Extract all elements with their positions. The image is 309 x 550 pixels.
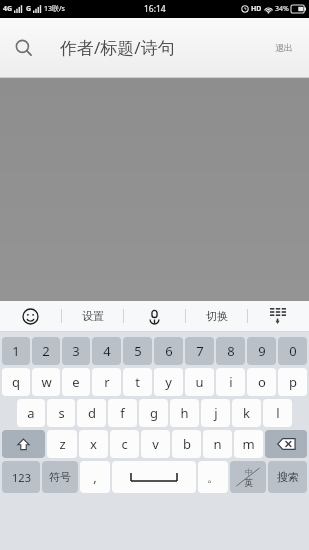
button[interactable]: u: [185, 368, 214, 396]
button[interactable]: r: [92, 368, 121, 396]
staticText: 16:14: [144, 3, 166, 15]
button[interactable]: l: [263, 399, 292, 427]
button[interactable]: p: [278, 368, 307, 396]
button[interactable]: w: [32, 368, 60, 396]
staticText: p: [289, 373, 297, 391]
button[interactable]: 退出: [271, 38, 297, 57]
button[interactable]: 3: [62, 337, 90, 365]
staticText: 英: [244, 477, 253, 488]
staticText: f: [120, 404, 125, 422]
staticText: 1: [12, 342, 20, 360]
staticText: 符号: [49, 470, 71, 484]
button[interactable]: Space: [112, 461, 196, 493]
staticText: x: [90, 435, 97, 453]
button[interactable]: g: [139, 399, 168, 427]
button[interactable]: v: [141, 430, 170, 458]
button[interactable]: 。: [198, 461, 228, 493]
button[interactable]: 5: [123, 337, 152, 365]
button[interactable]: 123: [2, 461, 40, 493]
button[interactable]: d: [77, 399, 106, 427]
staticText: ,: [93, 468, 97, 486]
button[interactable]: j: [201, 399, 230, 427]
staticText: g: [150, 404, 158, 422]
button[interactable]: 1: [2, 337, 30, 365]
button[interactable]: 6: [154, 337, 183, 365]
button[interactable]: b: [172, 430, 201, 458]
staticText: 13联/s: [44, 4, 65, 14]
button[interactable]: n: [203, 430, 232, 458]
button[interactable]: Search: [0, 18, 309, 77]
button[interactable]: t: [123, 368, 152, 396]
button[interactable]: 2: [32, 337, 60, 365]
staticText: 0: [289, 342, 297, 360]
button[interactable]: h: [170, 399, 199, 427]
staticText: s: [58, 404, 65, 422]
staticText: 中: [245, 467, 253, 477]
staticText: k: [243, 404, 250, 422]
staticText: 3: [72, 342, 80, 360]
button[interactable]: o: [247, 368, 276, 396]
button[interactable]: Voice input: [124, 301, 185, 331]
staticText: 4: [103, 342, 111, 360]
button[interactable]: Emoji: [0, 301, 61, 331]
staticText: HD: [251, 4, 262, 14]
button[interactable]: x: [79, 430, 108, 458]
staticText: t: [135, 373, 140, 391]
button[interactable]: 8: [216, 337, 245, 365]
staticText: c: [121, 435, 128, 453]
button[interactable]: 9: [247, 337, 276, 365]
staticText: e: [72, 373, 80, 391]
button[interactable]: q: [2, 368, 30, 396]
staticText: m: [242, 435, 255, 453]
button[interactable]: k: [232, 399, 261, 427]
staticText: y: [165, 373, 172, 391]
staticText: l: [276, 404, 280, 422]
button[interactable]: e: [62, 368, 90, 396]
button[interactable]: Backspace: [265, 430, 307, 458]
button[interactable]: 中: [230, 461, 266, 493]
staticText: d: [88, 404, 96, 422]
other: Search: [14, 38, 34, 58]
button[interactable]: z: [47, 430, 77, 458]
staticText: 。: [207, 470, 219, 485]
staticText: v: [152, 435, 159, 453]
staticText: 作者/标题/诗句: [60, 36, 175, 59]
button[interactable]: Shift: [2, 430, 45, 458]
staticText: 34%: [275, 4, 289, 14]
button[interactable]: m: [234, 430, 263, 458]
staticText: i: [229, 373, 233, 391]
button[interactable]: 4: [92, 337, 121, 365]
staticText: 5: [134, 342, 142, 360]
button[interactable]: c: [110, 430, 139, 458]
staticText: 7: [196, 342, 204, 360]
staticText: 9: [258, 342, 266, 360]
button[interactable]: a: [17, 399, 45, 427]
button[interactable]: Hide keyboard: [248, 301, 309, 331]
staticText: 搜索: [277, 470, 299, 484]
staticText: 切换: [206, 309, 228, 323]
staticText: 设置: [82, 309, 104, 323]
staticText: q: [12, 373, 20, 391]
button[interactable]: i: [216, 368, 245, 396]
staticText: r: [104, 373, 110, 391]
staticText: 4G: [3, 4, 13, 14]
button[interactable]: 切换: [186, 301, 247, 331]
staticText: u: [195, 373, 204, 391]
button[interactable]: 0: [278, 337, 307, 365]
button[interactable]: 搜索: [268, 461, 307, 493]
staticText: b: [183, 435, 191, 453]
staticText: 6: [165, 342, 173, 360]
staticText: G: [26, 4, 32, 14]
button[interactable]: ,: [80, 461, 110, 493]
button[interactable]: 7: [185, 337, 214, 365]
staticText: h: [180, 404, 189, 422]
staticText: j: [214, 404, 218, 422]
button[interactable]: s: [47, 399, 75, 427]
staticText: w: [41, 373, 52, 391]
button[interactable]: 设置: [62, 301, 123, 331]
button[interactable]: y: [154, 368, 183, 396]
staticText: n: [213, 435, 222, 453]
button[interactable]: 符号: [42, 461, 78, 493]
button[interactable]: f: [108, 399, 137, 427]
staticText: z: [59, 435, 66, 453]
